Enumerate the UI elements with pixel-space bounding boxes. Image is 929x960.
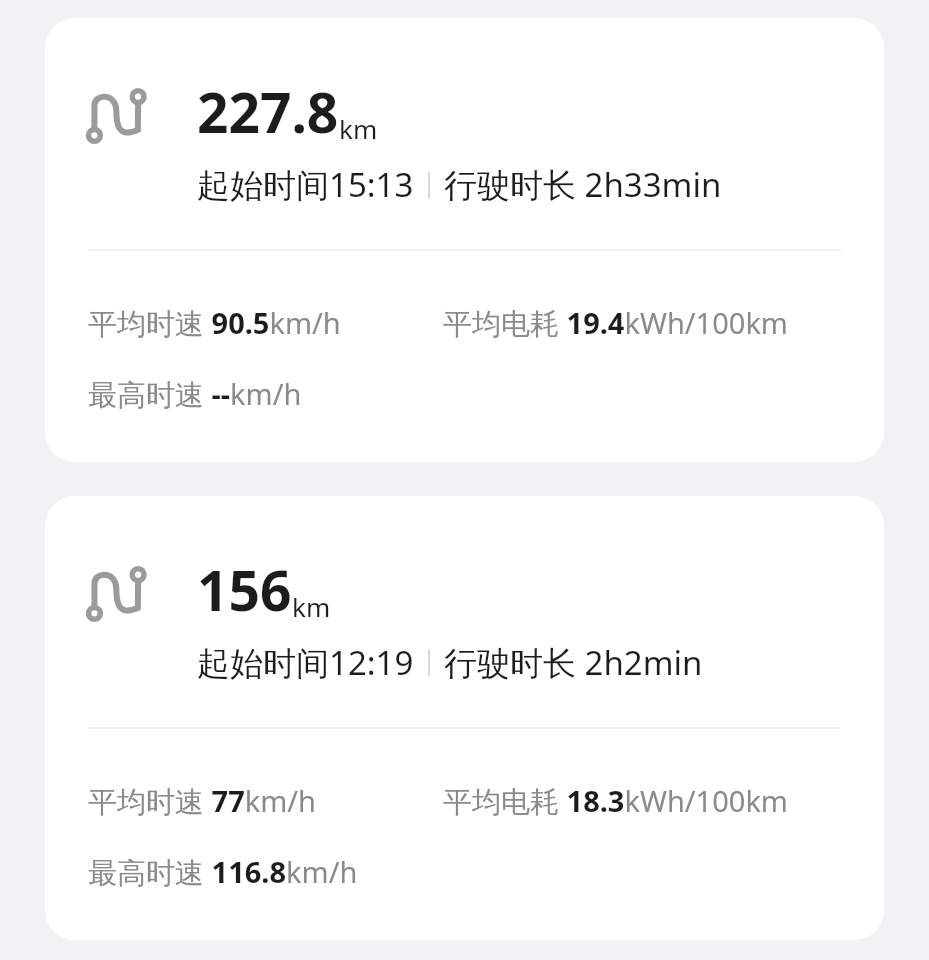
staticText: km bbox=[339, 111, 378, 146]
button[interactable]: Route bbox=[45, 18, 884, 462]
staticText: 227.8 bbox=[197, 74, 339, 149]
staticText: 行驶时长 2h33min bbox=[444, 162, 722, 207]
staticText: 最高时速 116.8km/h bbox=[88, 852, 358, 892]
other: Route bbox=[88, 566, 144, 622]
staticText: 起始时间12:19 bbox=[197, 640, 414, 685]
staticText: 平均电耗 19.4kWh/100km bbox=[443, 303, 788, 343]
staticText: 平均电耗 18.3kWh/100km bbox=[443, 781, 788, 821]
button[interactable]: Route bbox=[45, 496, 884, 940]
staticText: 行驶时长 2h2min bbox=[444, 640, 703, 685]
staticText: 平均时速 90.5km/h bbox=[88, 303, 443, 343]
staticText: 平均时速 77km/h bbox=[88, 781, 443, 821]
staticText: km bbox=[292, 589, 331, 624]
staticText: 起始时间15:13 bbox=[197, 162, 414, 207]
staticText: 156 bbox=[197, 552, 292, 627]
other: Route bbox=[88, 88, 144, 144]
staticText: 最高时速 --km/h bbox=[88, 374, 302, 414]
